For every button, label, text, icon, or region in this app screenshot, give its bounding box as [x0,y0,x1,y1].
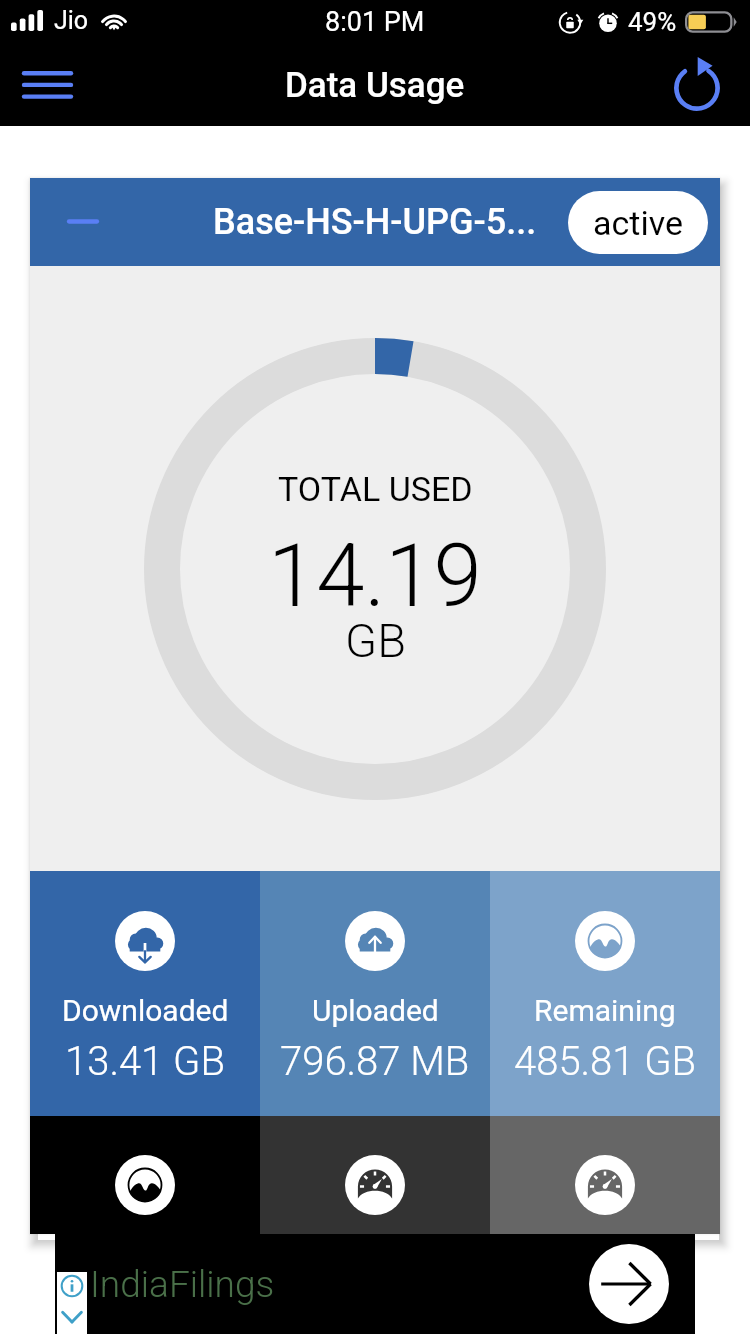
staticText: GB [345,613,406,668]
button[interactable]: Open advertisement [589,1244,669,1324]
button[interactable]: Ad information [57,1272,87,1334]
staticText: 14.19 [268,525,482,627]
staticText: Downloaded [62,993,229,1028]
staticText: Base-HS-H-UPG-5... [213,201,537,243]
staticText: TOTAL USED [278,469,473,509]
staticText: Remaining [534,993,676,1028]
button[interactable]: Base-HS-H-UPG-5... [30,178,720,266]
staticText: 796.87 MB [280,1038,470,1085]
button[interactable]: Speed test [490,1116,720,1234]
button[interactable]: Downloaded [30,871,260,1116]
button[interactable]: Data usage [30,1116,260,1234]
staticText: 485.81 GB [514,1038,697,1085]
button[interactable]: Remaining [490,871,720,1116]
button[interactable]: Speed test [260,1116,490,1234]
button[interactable]: Menu [4,63,90,126]
staticText: 13.41 GB [65,1038,225,1085]
button[interactable]: active [568,191,708,254]
staticText: 8:01 PM [325,6,425,38]
staticText: IndiaFilings [90,1263,275,1306]
staticText: Jio [54,6,89,35]
staticText: Data Usage [285,65,465,106]
staticText: active [593,203,683,243]
button[interactable]: Ad information [55,1234,695,1334]
button[interactable]: Uploaded [260,871,490,1116]
staticText: 49% [628,7,677,37]
staticText: Uploaded [312,993,439,1028]
button[interactable]: Refresh [657,63,737,126]
